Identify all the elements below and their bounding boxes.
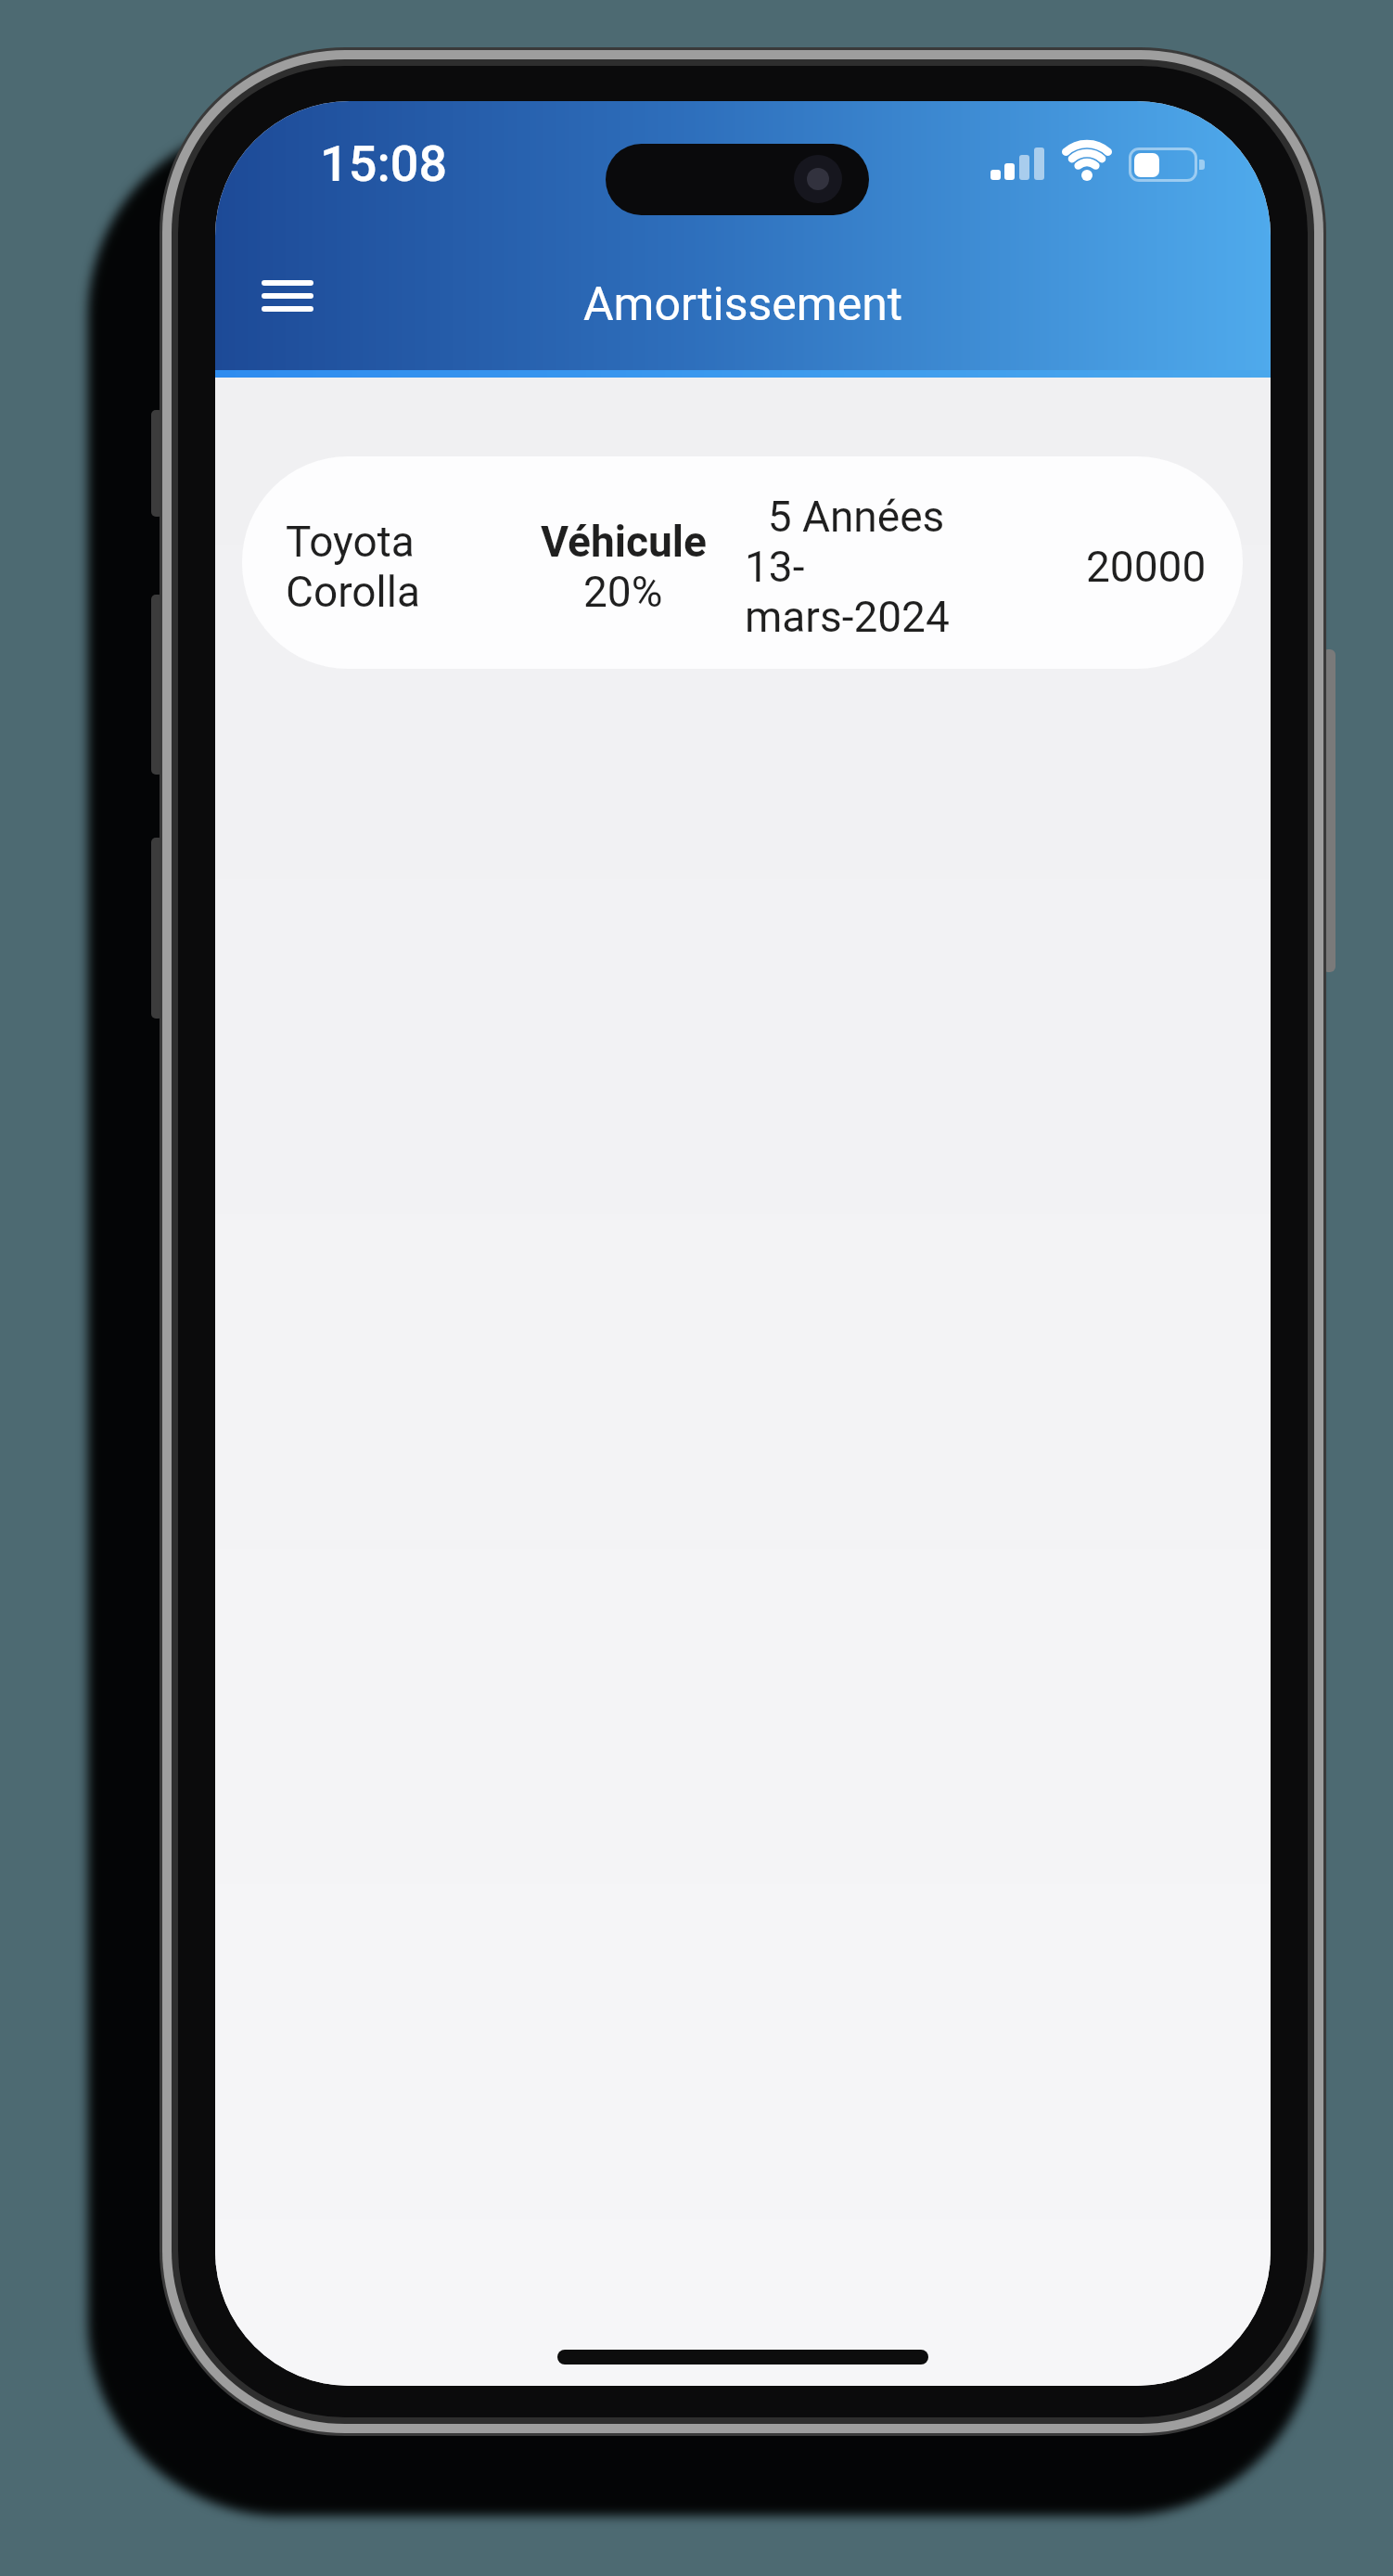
staticText: 20000 — [1086, 542, 1207, 592]
staticText: Corolla — [286, 567, 420, 617]
button[interactable] — [249, 267, 326, 325]
staticText: Véhicule — [541, 517, 707, 567]
button[interactable]: Toyota — [242, 456, 1243, 669]
staticText: 15:08 — [320, 135, 448, 193]
staticText: 5 Années — [745, 492, 967, 542]
staticText: Toyota — [286, 517, 415, 567]
staticText: Amortissement — [583, 277, 903, 332]
staticText: 20% — [583, 567, 663, 617]
staticText: mars-2024 — [745, 592, 950, 642]
staticText: 13- — [745, 542, 805, 592]
